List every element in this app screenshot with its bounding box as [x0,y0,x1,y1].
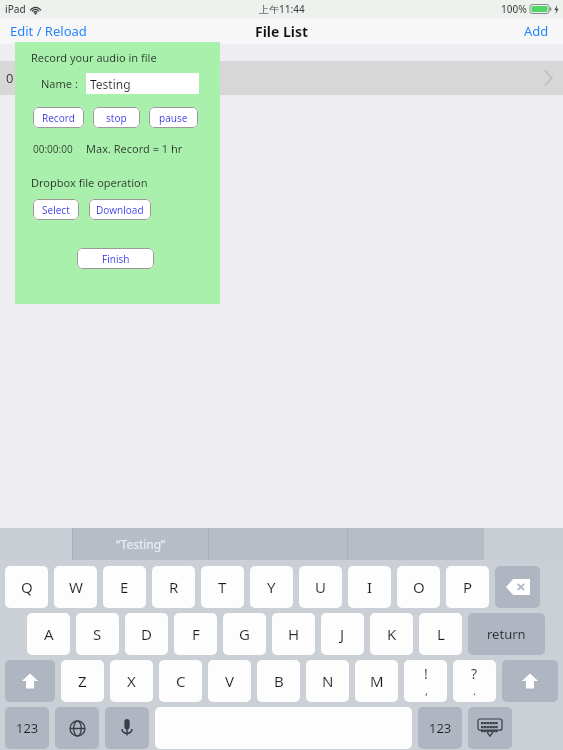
button[interactable]: T [201,566,244,608]
staticText: 123 [429,719,452,737]
staticText: 100% [501,2,527,16]
staticText: L [437,624,445,644]
button[interactable]: A [27,613,70,655]
button[interactable]: Q [5,566,48,608]
staticText: H [288,624,300,644]
button[interactable]: X [110,660,153,702]
staticText: Z [78,671,87,691]
staticText: P [463,577,473,597]
staticText: Edit / Reload [10,22,87,40]
button[interactable]: Select [33,199,79,220]
button[interactable]: O [397,566,440,608]
staticText: ! [424,664,428,683]
staticText: F [192,624,200,644]
button[interactable]: K [370,613,413,655]
staticText: Record [42,111,75,125]
button[interactable]: “Testing” [73,528,208,560]
staticText: N [322,671,334,691]
button[interactable]: Y [250,566,293,608]
button[interactable]: 0 [0,61,563,95]
staticText: pause [159,111,188,125]
button[interactable]: U [299,566,342,608]
button[interactable]: Dictation [105,707,149,749]
staticText: 0 [6,69,14,87]
button[interactable]: Next keyboard [55,707,99,749]
staticText: ? [471,664,478,683]
button[interactable]: I [348,566,391,608]
button[interactable]: F [174,613,217,655]
staticText: Q [21,577,33,597]
button[interactable]: ? [453,660,496,702]
staticText: iPad [5,2,26,16]
button[interactable]: J [321,613,364,655]
button[interactable]: E [103,566,146,608]
button[interactable]: Testing [86,73,199,94]
staticText: S [93,624,102,644]
staticText: J [340,624,345,644]
staticText: Testing [90,76,131,92]
button[interactable]: Hide keyboard [468,707,512,749]
staticText: T [218,577,227,597]
staticText: Finish [102,252,130,266]
staticText: G [239,624,250,644]
staticText: File List [255,22,309,41]
staticText: stop [106,111,127,125]
staticText: C [176,671,186,691]
button[interactable]: H [272,613,315,655]
staticText: Max. Record = 1 hr [86,141,183,156]
button[interactable]: 123 [418,707,462,749]
staticText: O [413,577,425,597]
button[interactable]: return [468,613,545,655]
staticText: , [425,683,428,698]
button[interactable]: Edit / Reload [0,19,97,43]
button[interactable]: N [306,660,349,702]
staticText: Download [96,203,144,217]
staticText: Name : [41,76,78,91]
staticText: 上午11:44 [259,2,305,16]
staticText: . [473,683,476,698]
button[interactable]: M [355,660,398,702]
button[interactable]: W [54,566,97,608]
button[interactable]: G [223,613,266,655]
staticText: 123 [16,719,39,737]
button[interactable]: L [419,613,462,655]
button[interactable]: Download [89,199,151,220]
staticText: I [367,577,373,597]
staticText: Add [524,22,549,40]
button[interactable]: V [208,660,251,702]
button[interactable]: stop [93,107,140,128]
staticText: M [370,671,384,691]
button[interactable]: Backspace [495,566,540,608]
button[interactable]: 123 [5,707,49,749]
button[interactable]: ! [404,660,447,702]
staticText: Record your audio in file [31,50,157,65]
button[interactable]: Shift [502,660,558,702]
button[interactable]: R [152,566,195,608]
staticText: E [120,577,129,597]
button[interactable]: Record [33,107,84,128]
staticText: A [44,624,54,644]
staticText: V [225,671,235,691]
staticText: R [169,577,179,597]
staticText: K [387,624,397,644]
staticText: return [487,625,526,643]
staticText: “Testing” [116,536,166,552]
button[interactable]: pause [149,107,198,128]
button[interactable]: S [76,613,119,655]
button[interactable]: P [446,566,489,608]
staticText: X [127,671,136,691]
button[interactable]: D [125,613,168,655]
staticText: B [274,671,284,691]
staticText: Dropbox file operation [31,175,148,190]
button[interactable]: Add [510,19,563,43]
button[interactable]: Shift [5,660,55,702]
button[interactable]: Z [61,660,104,702]
button[interactable]: Finish [77,248,154,269]
staticText: Y [267,577,276,597]
staticText: Select [42,203,70,217]
button[interactable]: C [159,660,202,702]
button[interactable]: B [257,660,300,702]
